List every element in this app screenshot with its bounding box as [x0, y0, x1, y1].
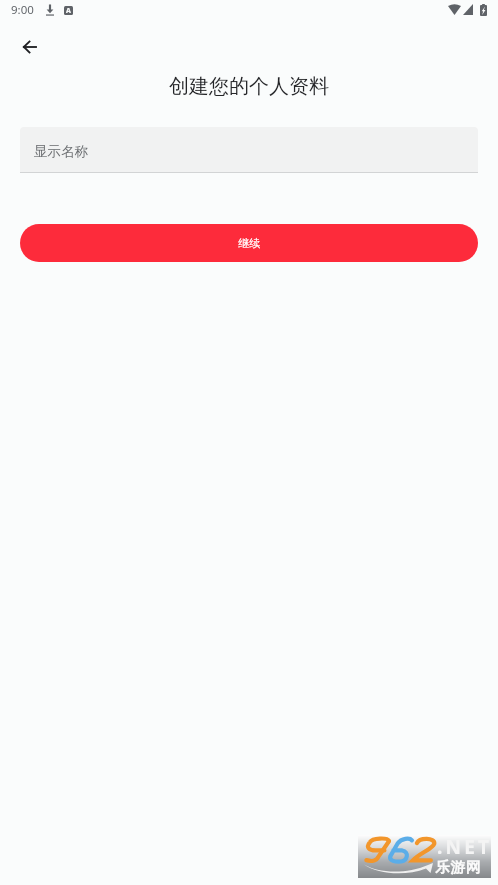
button[interactable]: 继续 — [20, 224, 478, 262]
staticText: 9:00 — [11, 2, 34, 18]
staticText: 继续 — [238, 236, 260, 250]
staticText: 创建您的个人资料 — [0, 74, 498, 99]
button[interactable]: Back — [10, 26, 50, 66]
staticText: 显示名称 — [34, 143, 88, 160]
staticText: A — [66, 6, 71, 15]
staticText: .NET — [437, 834, 493, 860]
staticText: 乐游网 — [435, 858, 482, 876]
button[interactable]: 显示名称 — [20, 127, 478, 173]
